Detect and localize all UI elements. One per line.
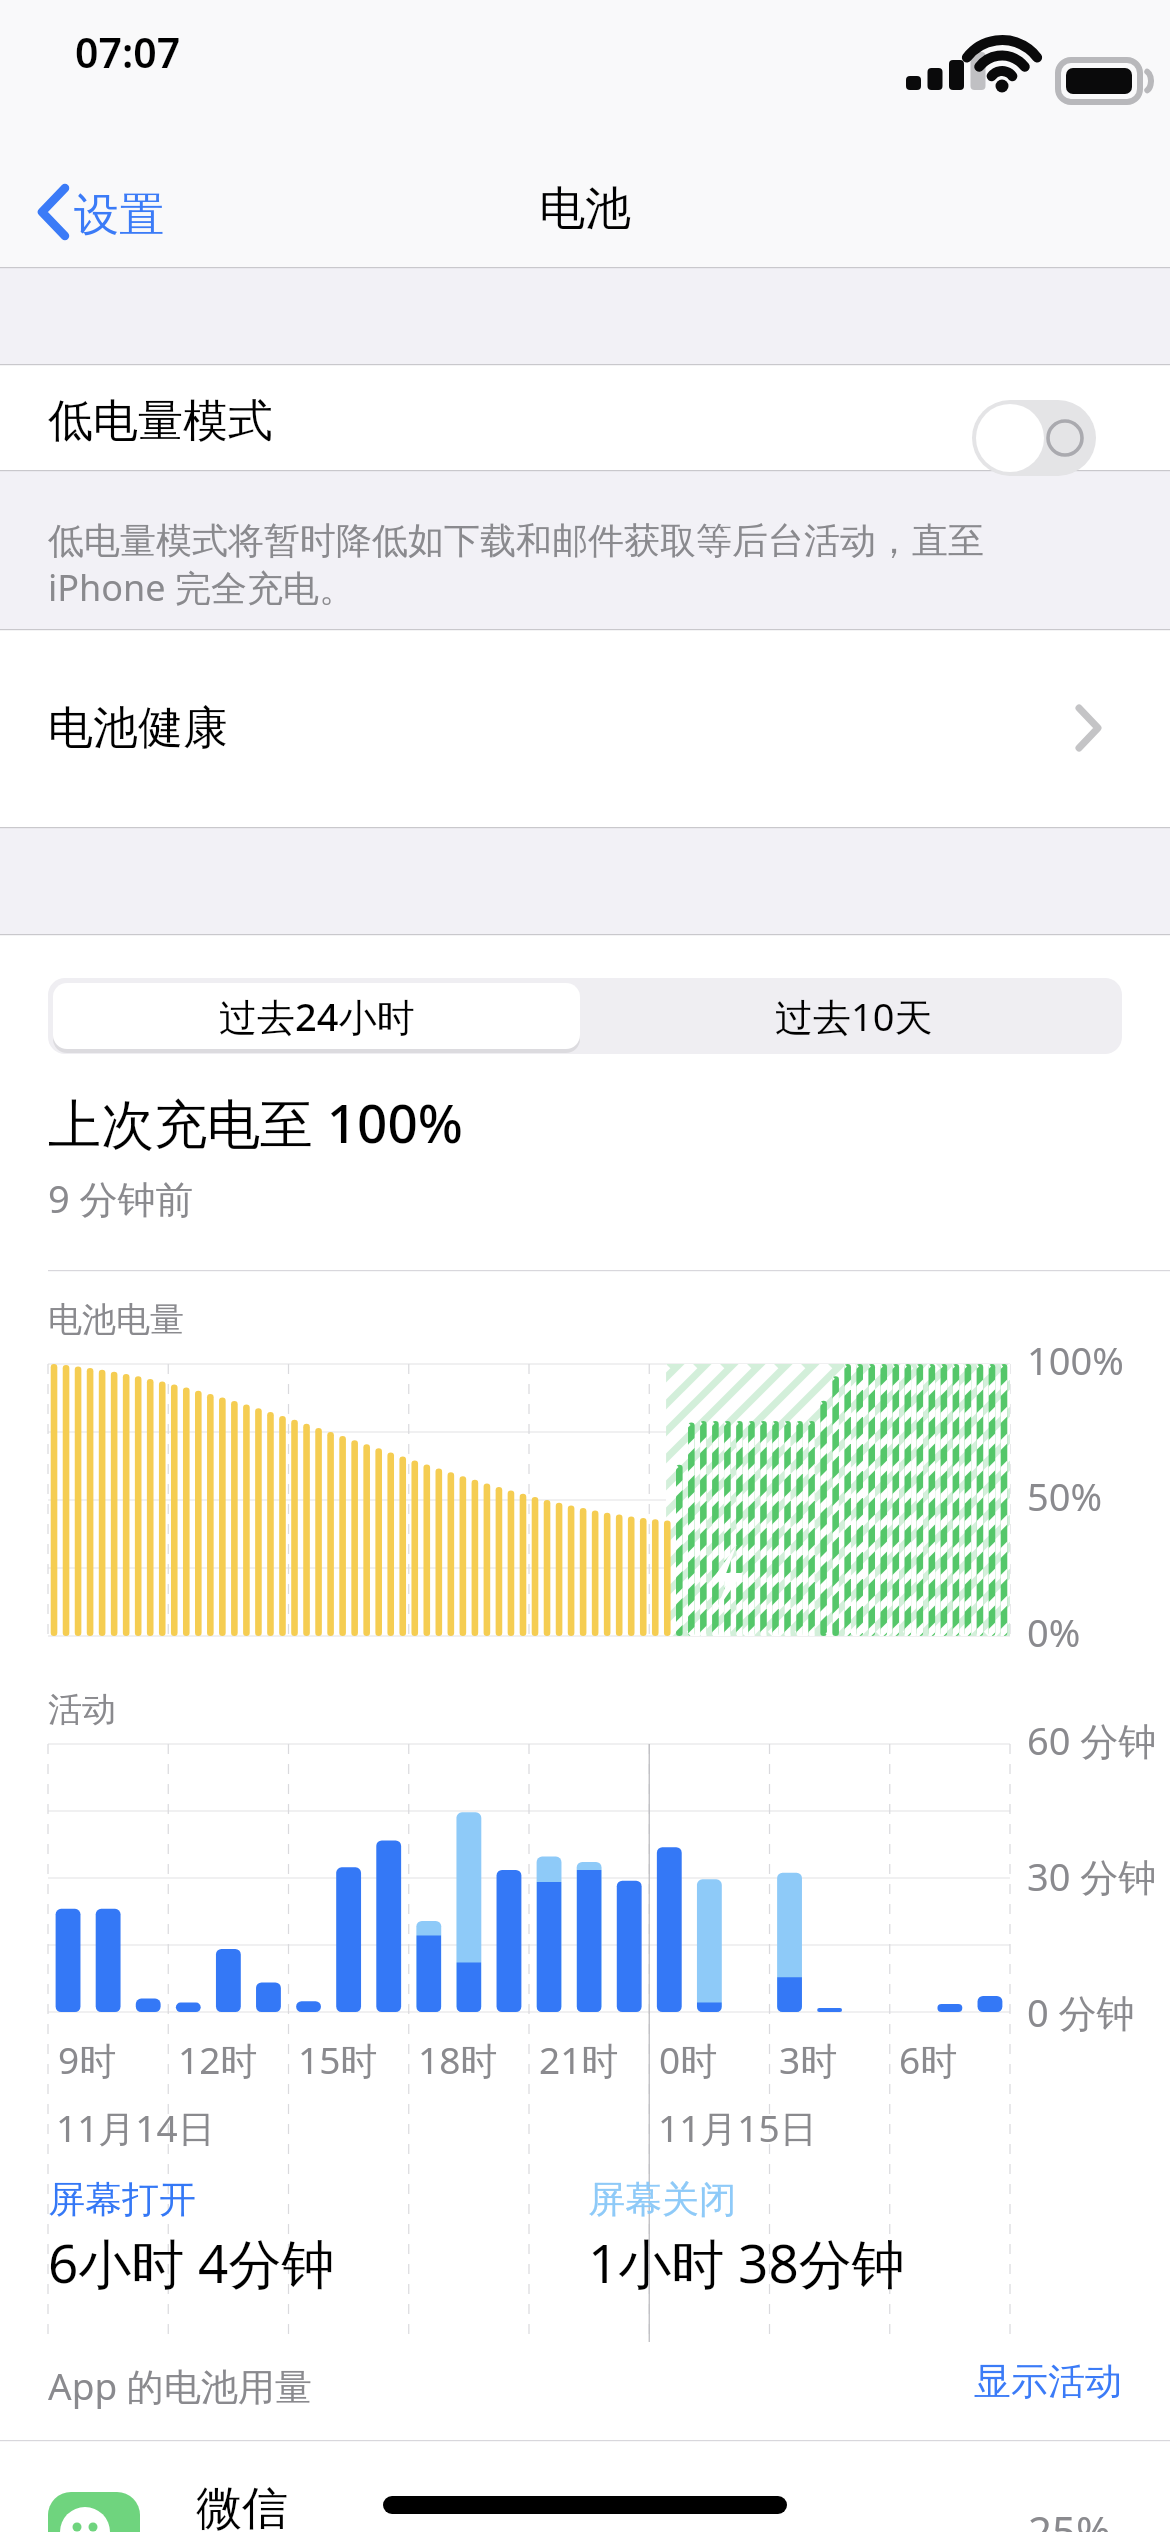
staticText: App 的电池用量 — [48, 2360, 312, 2411]
staticText: 21时 — [539, 2034, 619, 2085]
staticText: 微信 — [196, 2480, 288, 2532]
staticText: 07:07 — [75, 24, 181, 80]
staticText: 11月15日 — [658, 2102, 817, 2153]
button[interactable]: 显示活动 — [890, 2350, 1122, 2412]
staticText: 100% — [1027, 1334, 1124, 1386]
staticText: 电池健康 — [48, 700, 228, 757]
staticText: 11月14日 — [56, 2102, 215, 2153]
staticText: 3时 — [779, 2034, 838, 2085]
staticText: 1小时 38分钟 — [588, 2226, 905, 2298]
staticText: 电池 — [0, 180, 1170, 238]
staticText: 活动 — [48, 1688, 116, 1731]
button[interactable]: 低电量模式 — [0, 365, 1170, 471]
button[interactable]: 过去24小时 — [53, 983, 580, 1049]
staticText: 25% — [1028, 2502, 1111, 2532]
staticText: iPhone 完全充电。 — [48, 563, 356, 612]
staticText: 15时 — [298, 2034, 378, 2085]
staticText: 60 分钟 — [1027, 1714, 1157, 1766]
staticText: 屏幕打开 — [48, 2176, 196, 2223]
staticText: 18时 — [418, 2034, 498, 2085]
staticText: 30 分钟 — [1027, 1850, 1157, 1902]
staticText: 上次充电至 100% — [48, 1086, 463, 1158]
button[interactable]: 电池健康 — [0, 630, 1170, 828]
staticText: 电池电量 — [48, 1298, 184, 1341]
staticText: 显示活动 — [974, 2358, 1122, 2405]
button[interactable]: 返回 设置 — [18, 178, 230, 252]
staticText: 0时 — [659, 2034, 718, 2085]
button[interactable]: 过去10天 — [590, 983, 1117, 1049]
staticText: 6小时 4分钟 — [48, 2226, 335, 2298]
staticText: 屏幕关闭 — [588, 2176, 736, 2223]
button[interactable]: 微信 — [0, 2450, 1170, 2532]
staticText: 12时 — [178, 2034, 258, 2085]
staticText: 50% — [1027, 1470, 1103, 1522]
staticText: 设置 — [74, 187, 164, 244]
staticText: 0 分钟 — [1027, 1986, 1135, 2038]
staticText: 低电量模式将暂时降低如下载和邮件获取等后台活动，直至 — [48, 518, 984, 563]
staticText: 过去10天 — [775, 990, 933, 1042]
staticText: 低电量模式 — [48, 393, 273, 450]
staticText: 9时 — [58, 2034, 117, 2085]
staticText: 0% — [1027, 1606, 1081, 1658]
staticText: 6时 — [899, 2034, 958, 2085]
staticText: 9 分钟前 — [48, 1172, 194, 1224]
staticText: 过去24小时 — [219, 990, 415, 1042]
